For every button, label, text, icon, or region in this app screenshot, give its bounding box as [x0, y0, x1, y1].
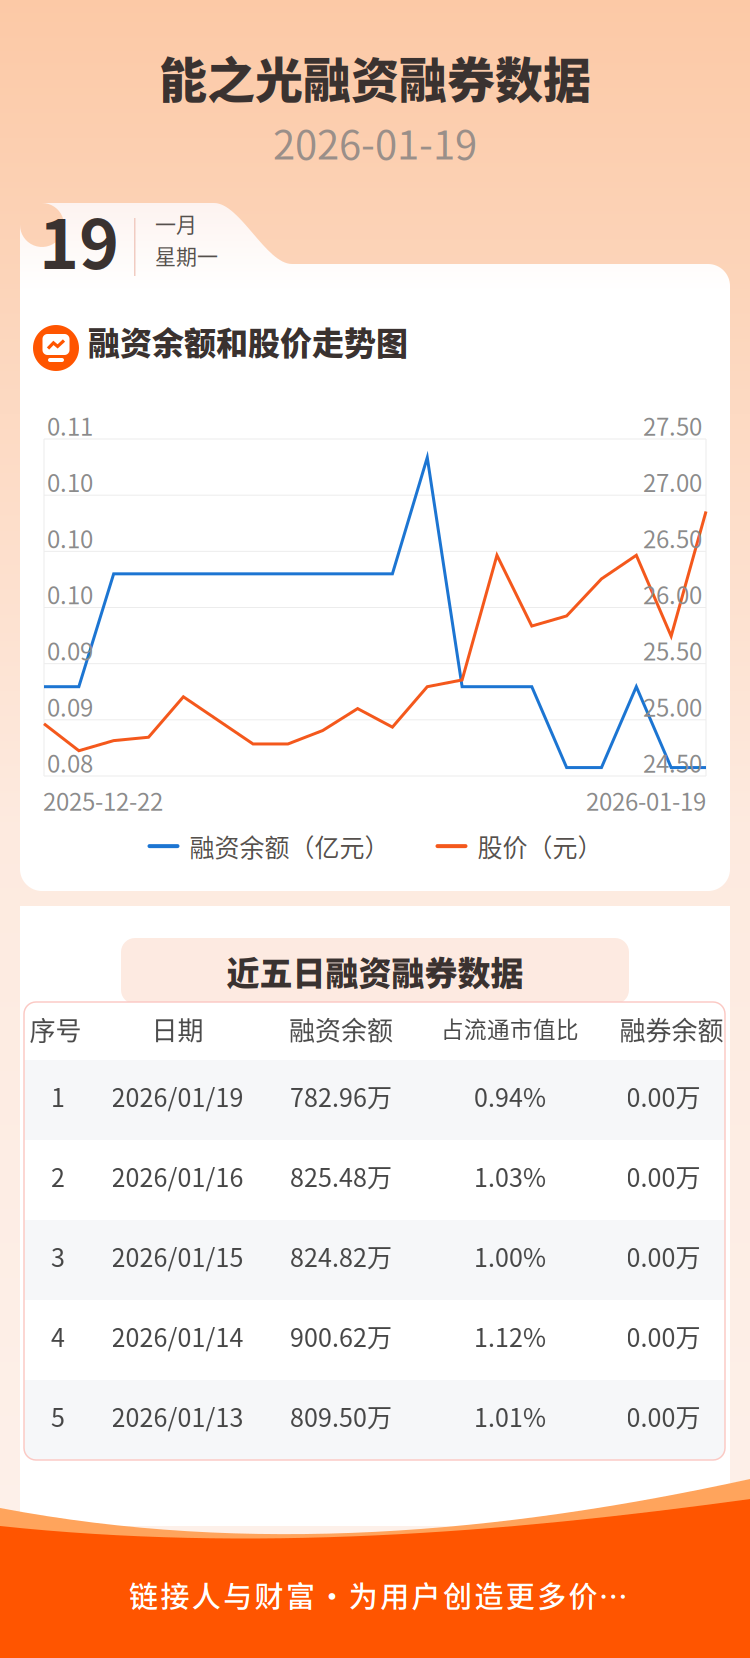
staticText: 4 [51, 1318, 65, 1354]
staticText: 0.08 [47, 745, 93, 780]
staticText: 19 [39, 190, 119, 288]
staticText: 0.10 [47, 520, 93, 555]
staticText: 26.50 [643, 520, 702, 555]
staticText: 0.00万 [626, 1158, 700, 1194]
staticText: 融资余额 [289, 1010, 393, 1048]
staticText: 24.50 [643, 745, 702, 780]
staticText: 股价（元） [477, 828, 602, 864]
staticText: 近五日融资融券数据 [226, 947, 523, 995]
staticText: 融资余额（亿元） [189, 828, 389, 864]
staticText: 25.50 [643, 633, 702, 667]
staticText: 825.48万 [290, 1158, 392, 1194]
staticText: 一月 [155, 208, 197, 238]
staticText: 占流通市值比 [441, 1012, 579, 1045]
staticText: 900.62万 [290, 1318, 392, 1354]
staticText: 809.50万 [290, 1398, 392, 1434]
staticText: 3 [51, 1238, 65, 1274]
staticText: 2026/01/19 [111, 1078, 243, 1114]
staticText: 824.82万 [290, 1238, 392, 1274]
staticText: 0.11 [47, 408, 93, 443]
staticText: 0.00万 [626, 1238, 700, 1274]
staticText: 0.09 [47, 633, 93, 667]
staticText: 链接人与财富·为用户创造更多价值 [129, 1574, 629, 1616]
staticText: 1.00% [474, 1238, 546, 1274]
staticText: 0.10 [47, 464, 93, 499]
staticText: 2026-01-19 [273, 113, 477, 171]
staticText: 0.94% [474, 1078, 546, 1114]
staticText: 能之光融资融券数据 [159, 42, 591, 111]
staticText: 0.00万 [626, 1398, 700, 1434]
staticText: 融券余额 [619, 1010, 723, 1048]
staticText: 1.03% [474, 1158, 546, 1194]
staticText: 星期一 [155, 240, 218, 270]
staticText: 序号 [29, 1010, 81, 1048]
staticText: 0.00万 [626, 1318, 700, 1354]
staticText: 融资余额和股价走势图 [88, 318, 408, 364]
staticText: 2026/01/13 [111, 1398, 243, 1434]
staticText: 2026/01/16 [111, 1158, 243, 1194]
staticText: 1 [51, 1078, 65, 1114]
staticText: 1.01% [474, 1398, 546, 1434]
staticText: 2026/01/15 [111, 1238, 243, 1274]
staticText: 27.50 [643, 408, 702, 443]
staticText: 25.00 [643, 689, 702, 724]
staticText: 5 [51, 1398, 65, 1434]
staticText: 2 [51, 1158, 65, 1194]
staticText: 0.09 [47, 689, 93, 724]
staticText: 26.00 [643, 576, 702, 611]
staticText: 27.00 [643, 464, 702, 499]
staticText: 日期 [151, 1010, 203, 1048]
staticText: 2025-12-22 [43, 783, 163, 818]
staticText: 2026/01/14 [111, 1318, 243, 1354]
staticText: 0.10 [47, 576, 93, 611]
staticText: 0.00万 [626, 1078, 700, 1114]
staticText: 2026-01-19 [586, 783, 706, 818]
staticText: 782.96万 [290, 1078, 392, 1114]
staticText: 1.12% [474, 1318, 546, 1354]
